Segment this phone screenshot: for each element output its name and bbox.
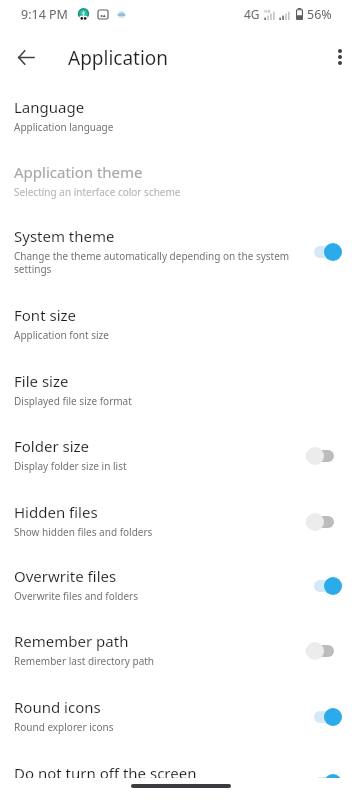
staticText: Round explorer icons <box>14 720 114 734</box>
staticText: Application font size <box>14 328 109 342</box>
button[interactable]: Toggle <box>306 577 342 595</box>
staticText: Round icons <box>14 697 101 717</box>
staticText: Displayed file size format <box>14 394 132 408</box>
staticText: Hidden files <box>14 502 98 522</box>
staticText: 9:14 PM <box>21 6 68 23</box>
staticText: Do not turn off the screen <box>14 763 197 783</box>
staticText: Application <box>68 45 169 71</box>
button[interactable]: Application theme <box>0 150 360 215</box>
staticText: 56% <box>307 6 332 23</box>
staticText: Folder size <box>14 436 90 456</box>
button[interactable]: Overwrite files <box>0 554 360 619</box>
staticText: Language <box>14 97 85 117</box>
staticText: Show hidden files and folders <box>14 525 153 539</box>
staticText: Font size <box>14 305 77 325</box>
button[interactable]: Toggle <box>306 243 342 261</box>
staticText: 4G <box>244 6 260 22</box>
button[interactable]: File size <box>0 359 360 424</box>
staticText: Overwrite files and folders <box>14 589 139 603</box>
button[interactable]: Toggle <box>306 642 342 660</box>
button[interactable]: System theme <box>0 214 360 292</box>
button[interactable]: Round icons <box>0 685 360 750</box>
button[interactable]: Back <box>0 28 52 84</box>
staticText: Overwrite files <box>14 566 117 586</box>
button[interactable]: Remember path <box>0 619 360 684</box>
staticText: Selecting an interface color scheme <box>14 185 181 199</box>
button[interactable]: Toggle <box>306 447 342 465</box>
button[interactable]: Hidden files <box>0 490 360 555</box>
button[interactable]: Do not turn off the screen <box>0 751 360 800</box>
staticText: Application theme <box>14 162 143 182</box>
button[interactable]: More options <box>319 28 360 84</box>
staticText: Application language <box>14 120 114 134</box>
staticText: Change the theme automatically depending… <box>14 249 298 276</box>
button[interactable]: Language <box>0 85 360 150</box>
button[interactable]: Toggle <box>306 513 342 531</box>
button[interactable]: Toggle <box>306 774 342 792</box>
staticText: Remember path <box>14 631 129 651</box>
staticText: File size <box>14 371 69 391</box>
staticText: System theme <box>14 226 115 246</box>
button[interactable]: Toggle <box>306 708 342 726</box>
button[interactable]: Folder size <box>0 424 360 489</box>
button[interactable]: Font size <box>0 293 360 358</box>
staticText: Do not turn off the screen while the app… <box>14 786 252 800</box>
staticText: Remember last directory path <box>14 654 155 668</box>
staticText: Display folder size in list <box>14 459 127 473</box>
